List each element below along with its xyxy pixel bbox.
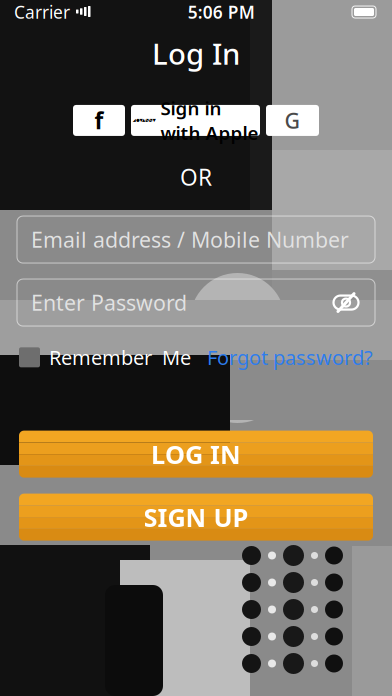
staticText: SIGN UP — [143, 500, 248, 534]
staticText: Remember Me — [49, 344, 191, 371]
button[interactable]:  — [131, 105, 260, 136]
staticText: Email address / Mobile Number — [31, 225, 349, 254]
staticText: Forgot password? — [207, 344, 373, 371]
staticText: LOG IN — [151, 437, 241, 471]
button[interactable]: Remember Me — [19, 344, 191, 371]
staticText: Sign in with Apple — [160, 96, 258, 145]
button[interactable]: LOG IN — [19, 431, 373, 478]
staticText: Enter Password — [31, 288, 187, 317]
staticText: G — [284, 106, 300, 135]
button[interactable]: SIGN UP — [19, 494, 373, 541]
staticText: 5:06 PM — [188, 0, 255, 23]
button[interactable]: Forgot password? — [207, 344, 373, 371]
staticText: OR — [180, 162, 212, 192]
staticText:  — [132, 109, 156, 132]
staticText: Log In — [152, 34, 240, 73]
button[interactable]: Sign in with Facebook — [73, 105, 125, 136]
staticText: f — [94, 105, 103, 135]
staticText: Carrier — [14, 0, 70, 23]
button[interactable]: Sign in with Google — [266, 105, 319, 136]
